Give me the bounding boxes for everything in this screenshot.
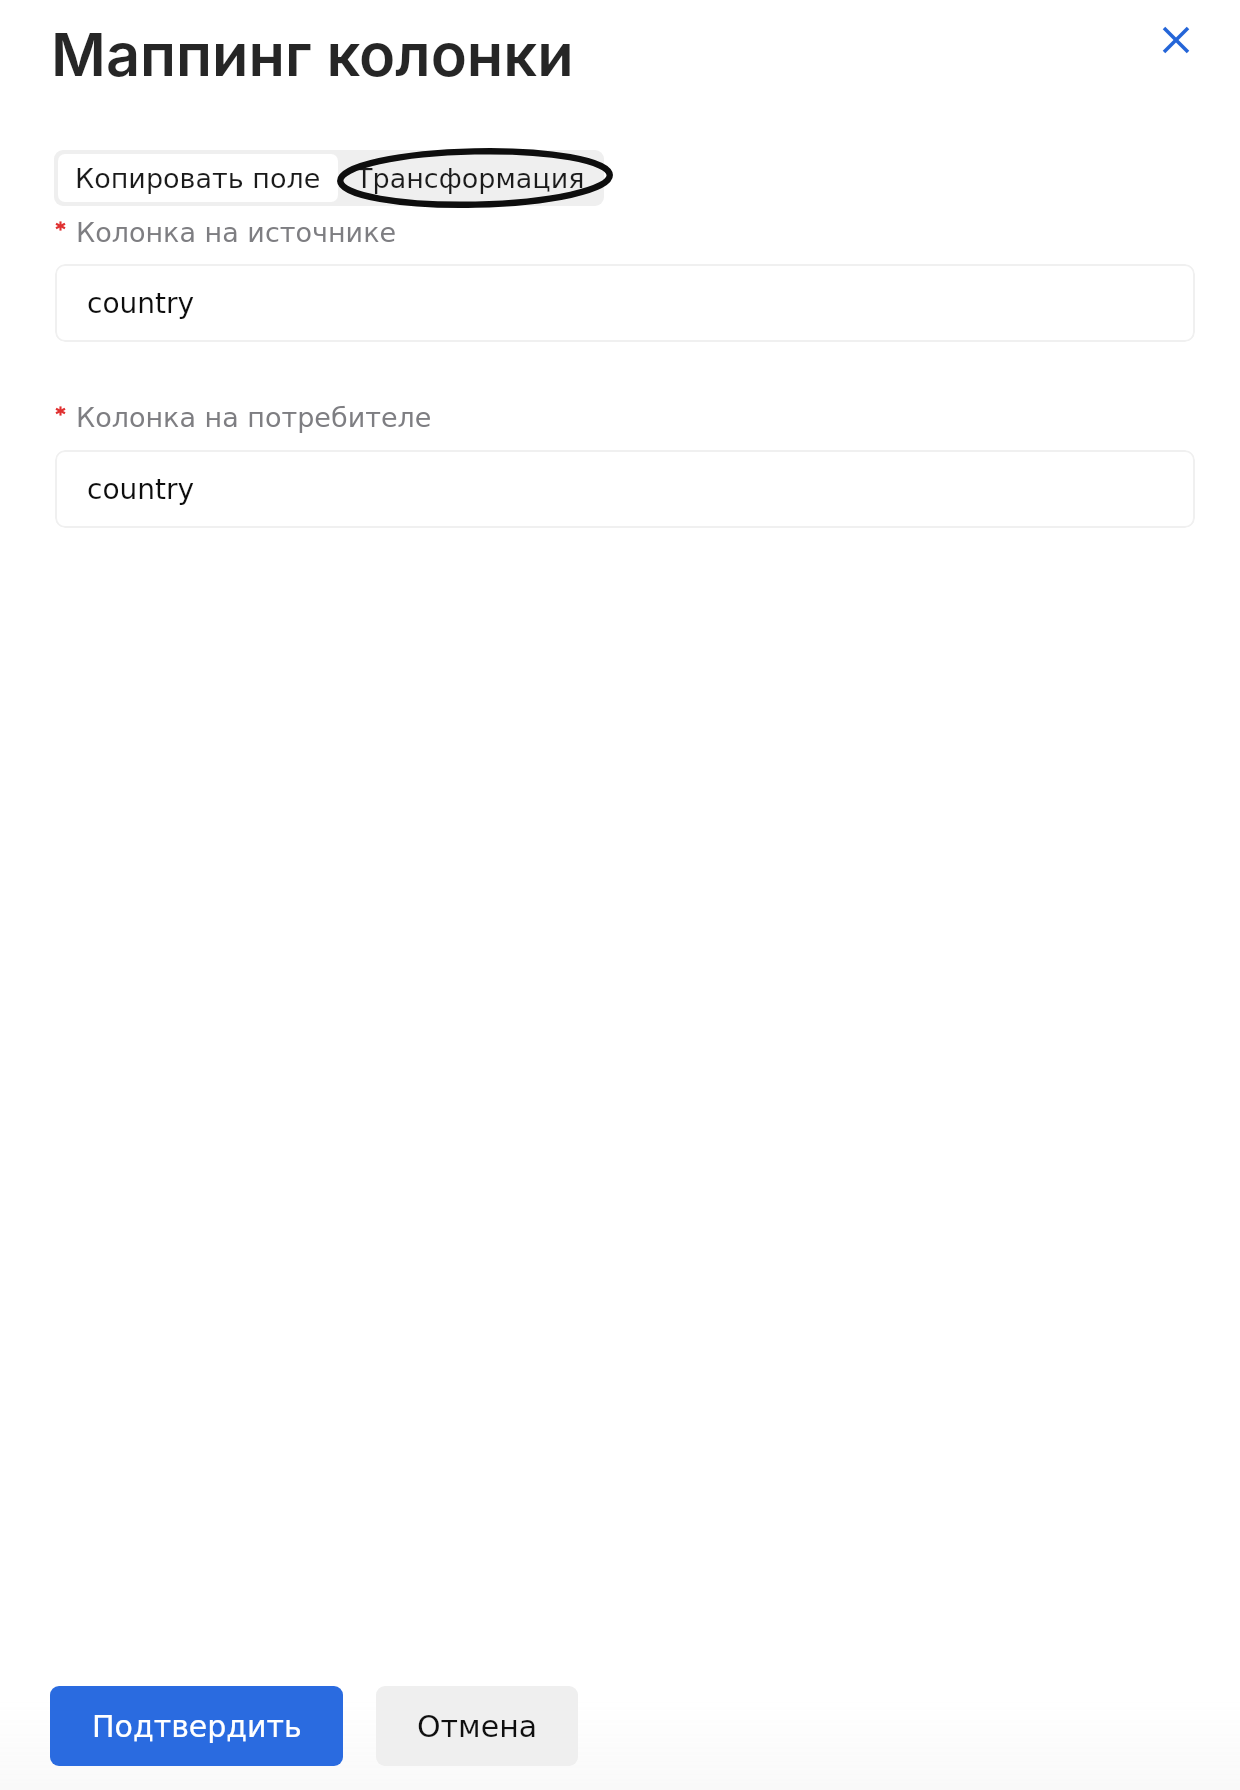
button[interactable]: Копировать поле <box>58 154 338 202</box>
staticText: Трансформация <box>356 163 585 194</box>
staticText: Копировать поле <box>75 163 321 194</box>
button[interactable]: Трансформация <box>336 150 604 206</box>
button[interactable]: Подтвердить <box>50 1686 343 1766</box>
staticText: Отмена <box>417 1709 538 1744</box>
staticText: Колонка на источнике <box>76 217 397 248</box>
other: Обязательное поле <box>55 221 66 231</box>
other: Обязательное поле <box>55 406 66 416</box>
button[interactable]: country <box>55 264 1195 342</box>
button[interactable]: country <box>55 450 1195 528</box>
staticText: Маппинг колонки <box>51 18 574 90</box>
staticText: country <box>87 473 195 506</box>
button[interactable]: Отмена <box>376 1686 578 1766</box>
staticText: Колонка на потребителе <box>76 402 432 433</box>
staticText: Подтвердить <box>92 1709 302 1744</box>
button[interactable]: Закрыть <box>1144 8 1208 72</box>
staticText: country <box>87 287 195 320</box>
